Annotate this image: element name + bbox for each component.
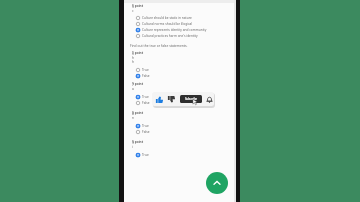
button[interactable]: Culture should be static in nature [124,15,234,21]
staticText: False [142,74,234,78]
button[interactable]: Culture represents identity and communit… [124,27,234,33]
button[interactable]: True [124,152,234,158]
staticText: Find out the true or false statements. [130,43,234,47]
button[interactable]: True [124,67,234,73]
staticText: True [142,95,234,99]
button[interactable]: True [124,123,234,129]
staticText: False [142,130,234,134]
staticText: Subscribe [180,97,202,101]
button[interactable]: Cultural norms should be illogical [124,21,234,27]
staticText: True [142,68,234,72]
staticText: Cultural practices harm one's identity [142,34,234,38]
button[interactable]: False [124,129,234,135]
staticText: True [142,124,234,128]
staticText: Culture should be static in nature [142,16,234,20]
staticText: 1 point [132,82,230,86]
button[interactable]: True [124,94,234,100]
staticText: 1 point [132,4,230,8]
button[interactable]: Dislike [167,95,176,104]
button[interactable]: Scroll to top [206,172,228,194]
staticText: 1 point [132,111,230,115]
staticText: False [142,101,234,105]
button[interactable]: False [124,73,234,79]
button[interactable]: False [124,100,234,106]
staticText: Cultural norms should be illogical [142,22,234,26]
staticText: 1 point [132,51,230,55]
staticText: 1 point [132,140,230,144]
button[interactable]: Like [155,95,164,104]
staticText: True [142,153,234,157]
button[interactable]: Cultural practices harm one's identity [124,33,234,39]
button[interactable]: Notifications [205,95,214,104]
staticText: Culture represents identity and communit… [142,28,234,32]
button[interactable]: Subscribe [180,95,202,103]
